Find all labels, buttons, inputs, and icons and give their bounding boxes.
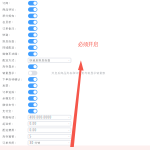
button[interactable]: 快递： [0, 32, 150, 38]
staticText: 到店自提： [2, 40, 17, 43]
button[interactable]: 起送价： [0, 121, 150, 127]
button[interactable]: 余额支付： [0, 95, 150, 101]
button[interactable]: 积分抵扣： [0, 13, 150, 19]
button[interactable]: 配送费用： [0, 127, 150, 133]
staticText: ▾ [69, 142, 70, 144]
staticText: 购物车功能： [2, 52, 20, 56]
staticText: 发票： [2, 84, 11, 87]
staticText: 0.00 [29, 128, 36, 132]
staticText: 商品评论： [2, 8, 17, 11]
staticText: 余额支付： [2, 97, 17, 100]
staticText: 5 [29, 135, 31, 138]
staticText: 配送方式： [2, 59, 17, 62]
button[interactable]: 库存预警： [0, 133, 150, 140]
staticText: 订单备注： [2, 27, 17, 30]
button[interactable]: 销量显示： [0, 70, 150, 76]
staticText: 快递： [2, 33, 11, 37]
button[interactable]: 支付宝： [0, 108, 150, 114]
staticText: 积分抵扣： [2, 14, 17, 17]
button[interactable]: 商品评论： [0, 6, 150, 13]
staticText: 0.00 [29, 122, 36, 126]
staticText: 客服电话： [2, 116, 17, 119]
button[interactable]: 库存显示： [0, 63, 150, 70]
staticText: 同城配送： [2, 46, 17, 49]
button[interactable]: 到店自提： [0, 38, 150, 44]
staticText: 订阅： [2, 1, 11, 5]
staticText: 开启后商品列表和详情页均将显示销量数 [51, 71, 105, 75]
button[interactable]: 订单关闭： [0, 140, 150, 146]
staticText: ▾ [69, 123, 70, 125]
button[interactable]: 下单自动确认： [0, 76, 150, 82]
staticText: 下单自动确认： [2, 78, 23, 81]
staticText: 起送价： [2, 122, 14, 125]
staticText: 会员价： [2, 21, 14, 24]
button[interactable]: 客服电话： [0, 114, 150, 121]
staticText: 400-000-0000 [29, 116, 51, 119]
staticText: 30 分钟 [29, 141, 40, 145]
staticText: 库存显示： [2, 65, 17, 68]
staticText: 销量显示： [2, 71, 17, 75]
button[interactable]: 订单追踪： [0, 89, 150, 95]
button[interactable]: 购物车功能： [0, 51, 150, 57]
staticText: 订单关闭： [2, 141, 17, 144]
button[interactable]: 会员价： [0, 19, 150, 25]
button[interactable]: 订阅： [0, 0, 150, 6]
button[interactable]: 发票： [0, 82, 150, 89]
staticText: 库存预警： [2, 135, 17, 138]
button[interactable]: 同城配送： [0, 44, 150, 51]
staticText: 配送费用： [2, 128, 17, 132]
staticText: 订单追踪： [2, 90, 17, 94]
staticText: 必须开启 [78, 41, 98, 48]
staticText: 微信支付： [2, 103, 17, 106]
staticText: 支付宝： [2, 109, 14, 113]
button[interactable]: 微信支付： [0, 102, 150, 108]
button[interactable]: 订单备注： [0, 25, 150, 32]
staticText: ▾ [69, 129, 70, 131]
staticText: 快递及到店自提 [29, 59, 50, 62]
button[interactable]: 配送方式： [0, 57, 150, 63]
